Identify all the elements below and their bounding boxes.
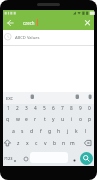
- button[interactable]: f: [36, 125, 45, 137]
- button[interactable]: g: [45, 125, 54, 137]
- staticText: o: [79, 116, 83, 123]
- button[interactable]: i: [67, 113, 76, 125]
- button[interactable]: [3, 137, 17, 149]
- staticText: 1: [7, 105, 10, 112]
- staticText: n: [62, 140, 66, 147]
- staticText: j: [67, 128, 69, 135]
- staticText: a: [12, 128, 15, 135]
- button[interactable]: u: [58, 113, 67, 125]
- staticText: 4: [34, 105, 37, 112]
- staticText: d: [30, 128, 34, 135]
- button[interactable]: b: [50, 137, 59, 149]
- staticText: x: [26, 140, 29, 147]
- button[interactable]: [4, 16, 16, 30]
- button[interactable]: o: [76, 113, 85, 125]
- staticText: l: [85, 128, 87, 135]
- button[interactable]: k: [72, 125, 81, 137]
- staticText: e: [25, 116, 28, 123]
- button[interactable]: d: [27, 125, 36, 137]
- button[interactable]: 3: [22, 104, 31, 113]
- staticText: b: [53, 140, 57, 147]
- button[interactable]: ?123: [3, 151, 13, 165]
- button[interactable]: 5: [40, 104, 49, 113]
- staticText: q: [6, 116, 10, 123]
- staticText: s: [21, 128, 24, 135]
- staticText: c: [35, 140, 38, 147]
- staticText: h: [57, 128, 61, 135]
- button[interactable]: x: [23, 137, 32, 149]
- button[interactable]: [20, 151, 32, 165]
- button[interactable]: 8: [67, 104, 76, 113]
- staticText: 5: [43, 105, 46, 112]
- staticText: 9: [79, 105, 82, 112]
- button[interactable]: a: [8, 125, 18, 137]
- staticText: v: [44, 140, 47, 147]
- button[interactable]: j: [63, 125, 72, 137]
- staticText: EXC: [6, 96, 14, 101]
- button[interactable]: s: [18, 125, 27, 137]
- button[interactable]: h: [54, 125, 63, 137]
- button[interactable]: 9: [76, 104, 85, 113]
- button[interactable]: 2: [13, 104, 22, 113]
- button[interactable]: [70, 154, 79, 166]
- staticText: czech: [23, 20, 35, 26]
- button[interactable]: n: [59, 137, 68, 149]
- staticText: r: [34, 116, 37, 123]
- button[interactable]: 1: [3, 104, 13, 113]
- button[interactable]: 4: [31, 104, 40, 113]
- button[interactable]: r: [31, 113, 40, 125]
- staticText: z: [17, 140, 20, 147]
- button[interactable]: c: [32, 137, 41, 149]
- staticText: ?123: [4, 156, 13, 161]
- button[interactable]: EXC: [4, 92, 16, 104]
- button[interactable]: t: [40, 113, 49, 125]
- staticText: g: [48, 128, 52, 135]
- button[interactable]: 0: [85, 104, 94, 113]
- staticText: ABCD Values: [15, 35, 40, 41]
- button[interactable]: [81, 16, 94, 30]
- staticText: u: [61, 116, 65, 123]
- staticText: 6: [52, 105, 55, 112]
- button[interactable]: q: [3, 113, 13, 125]
- staticText: 8: [70, 105, 73, 112]
- staticText: p: [88, 116, 92, 123]
- button[interactable]: p: [85, 113, 94, 125]
- staticText: t: [44, 116, 46, 123]
- staticText: y: [52, 116, 55, 123]
- staticText: 3: [25, 105, 28, 112]
- button[interactable]: ABCD Values: [3, 30, 94, 45]
- staticText: 0: [88, 105, 91, 112]
- staticText: i: [71, 116, 73, 123]
- button[interactable]: y: [49, 113, 58, 125]
- staticText: 2: [16, 105, 19, 112]
- button[interactable]: [80, 152, 93, 165]
- button[interactable]: l: [81, 125, 90, 137]
- staticText: f: [40, 128, 42, 135]
- staticText: k: [75, 128, 78, 135]
- button[interactable]: [81, 137, 95, 149]
- button[interactable]: e: [22, 113, 31, 125]
- button[interactable]: m: [68, 137, 77, 149]
- button[interactable]: w: [13, 113, 22, 125]
- button[interactable]: 7: [58, 104, 67, 113]
- button[interactable]: z: [13, 137, 23, 149]
- button[interactable]: 6: [49, 104, 58, 113]
- staticText: m: [70, 140, 75, 147]
- staticText: w: [16, 116, 20, 123]
- staticText: 7: [61, 105, 64, 112]
- button[interactable]: v: [41, 137, 50, 149]
